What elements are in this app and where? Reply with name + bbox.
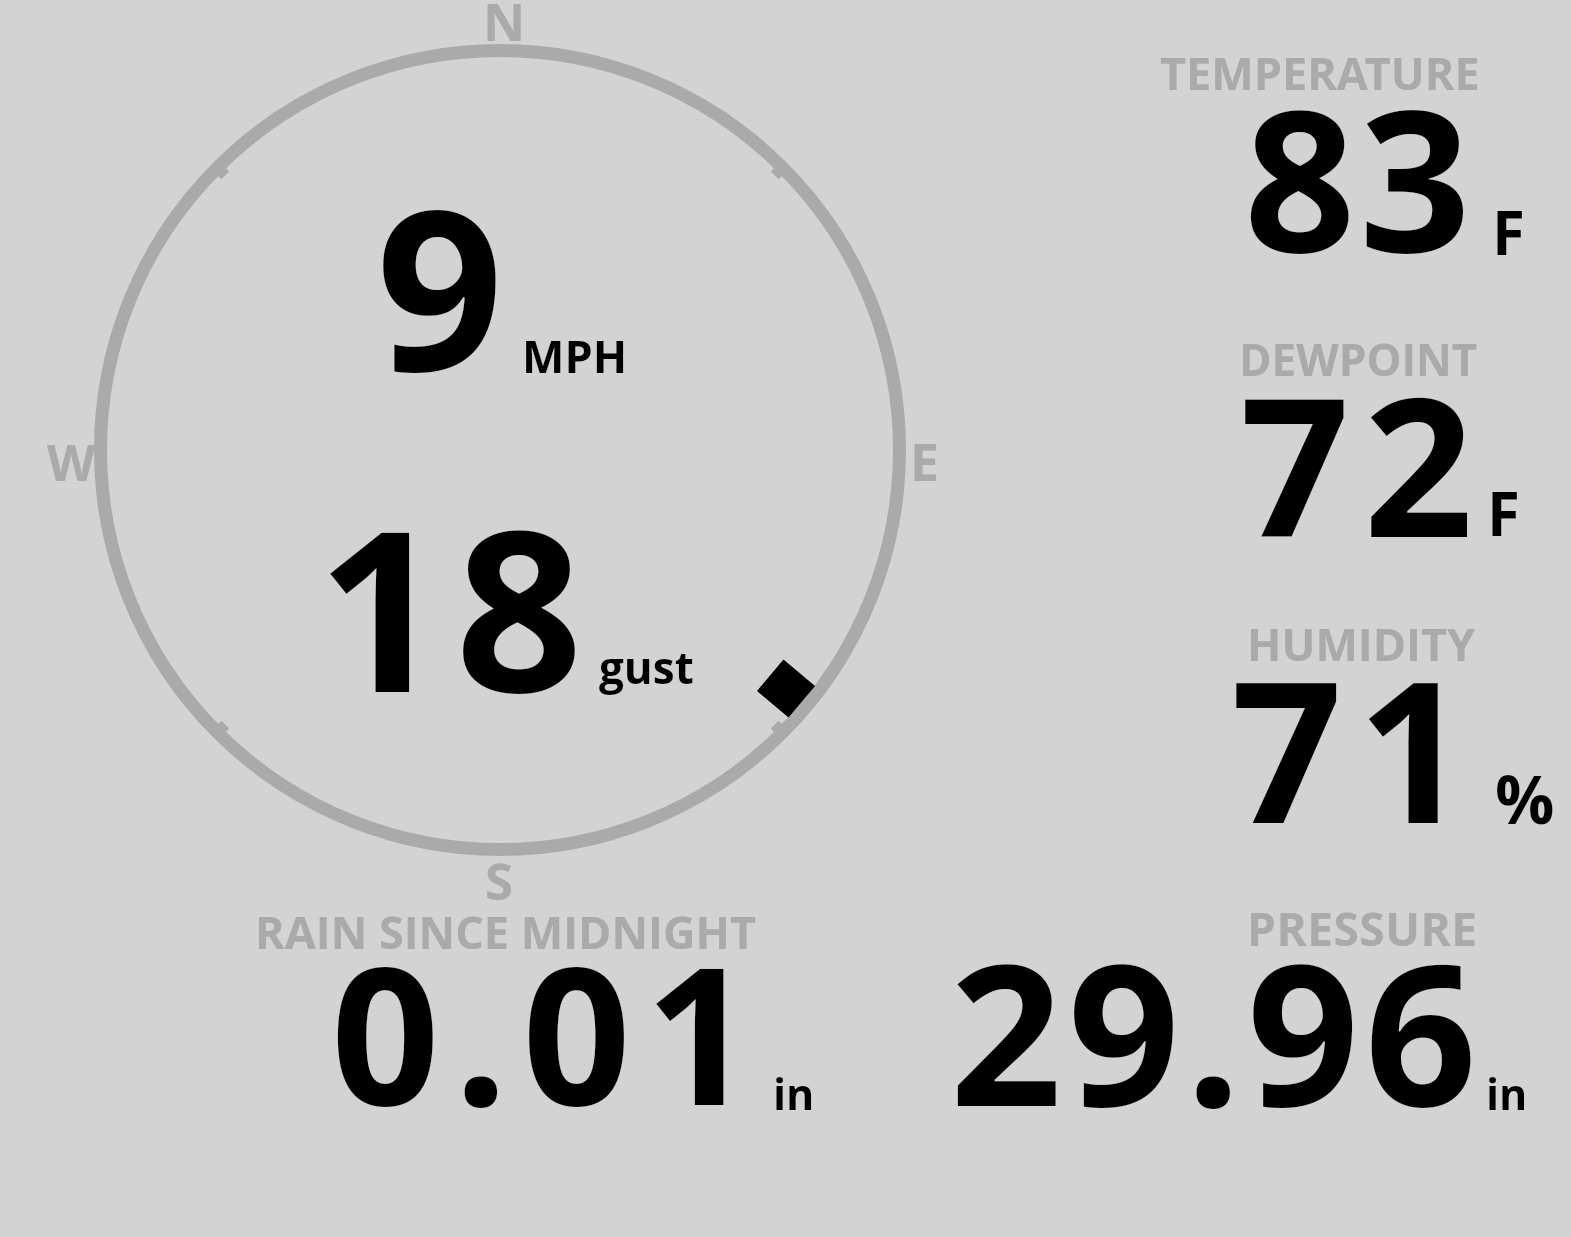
staticText: 0.01 [331, 902, 768, 1161]
staticText: E [910, 425, 940, 496]
staticText: % [1495, 753, 1555, 843]
staticText: RAIN SINCE MIDNIGHT [255, 901, 756, 962]
staticText: 18 [317, 454, 594, 758]
staticText: 83 [1244, 44, 1475, 310]
button[interactable]: Pressure 29.96 inches [900, 895, 1520, 1130]
button[interactable]: Wind speed and direction [90, 35, 920, 865]
staticText: 71 [1231, 615, 1484, 881]
staticText: DEWPOINT [1239, 329, 1478, 389]
staticText: in [773, 1064, 815, 1123]
staticText: W [47, 428, 96, 496]
staticText: in [1486, 1064, 1528, 1123]
staticText: MPH [522, 325, 628, 386]
staticText: N [483, 0, 526, 56]
button[interactable]: Dewpoint 72 degrees F [1140, 310, 1570, 575]
staticText: gust [599, 637, 694, 697]
button[interactable]: Rain since midnight 0.01 inches [240, 895, 850, 1130]
staticText: PRESSURE [1247, 897, 1478, 960]
staticText: F [1487, 472, 1520, 554]
staticText: S [485, 845, 514, 914]
staticText: TEMPERATURE [1160, 42, 1480, 103]
button[interactable]: Humidity 71 percent [1140, 595, 1570, 860]
staticText: HUMIDITY [1247, 613, 1476, 674]
staticText: 72 [1240, 332, 1488, 593]
staticText: 9 [376, 133, 504, 437]
staticText: 29.96 [950, 897, 1483, 1164]
button[interactable]: Temperature 83 degrees F [1140, 30, 1570, 285]
staticText: F [1492, 191, 1525, 273]
